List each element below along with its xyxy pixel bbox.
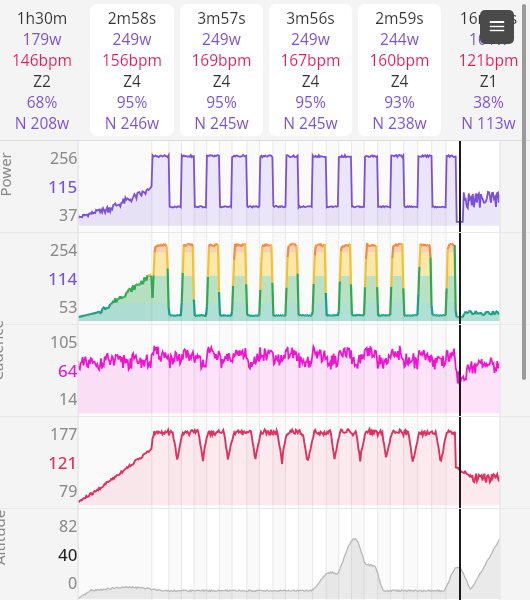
staticText: 244w	[361, 28, 438, 49]
staticText: 82	[59, 515, 78, 537]
staticText: 38%	[450, 91, 527, 112]
staticText: 1h30m	[3, 7, 81, 28]
staticText: 2m59s	[361, 7, 438, 28]
staticText: N 238w	[361, 112, 438, 133]
button[interactable]: 16m21s	[447, 4, 530, 136]
staticText: 79	[59, 480, 78, 502]
staticText: Altitude	[0, 509, 9, 565]
button[interactable]: 2m58s	[90, 4, 174, 136]
staticText: 37	[59, 204, 78, 226]
staticText: 254	[50, 239, 78, 261]
staticText: Cadence	[0, 319, 6, 380]
staticText: 64	[58, 359, 78, 382]
staticText: 95%	[93, 91, 171, 112]
staticText: Z4	[272, 70, 349, 91]
staticText: 121bpm	[450, 49, 527, 70]
staticText: 114	[48, 267, 78, 290]
staticText: Z2	[3, 70, 81, 91]
staticText: 93%	[361, 91, 438, 112]
staticText: N 245w	[183, 112, 260, 133]
staticText: 179w	[3, 28, 81, 49]
staticText: 105	[50, 331, 78, 353]
button[interactable]: Lap list	[480, 10, 514, 44]
staticText: 156bpm	[93, 49, 171, 70]
staticText: 95%	[183, 91, 260, 112]
staticText: 249w	[183, 28, 260, 49]
staticText: Z4	[93, 70, 171, 91]
staticText: N 245w	[272, 112, 349, 133]
staticText: 68%	[3, 91, 81, 112]
staticText: 256	[50, 147, 78, 169]
staticText: 40	[58, 543, 78, 566]
staticText: Z4	[361, 70, 438, 91]
staticText: 167bpm	[272, 49, 349, 70]
button[interactable]: 1h30m	[0, 4, 84, 136]
staticText: Z1	[450, 70, 527, 91]
staticText: Power	[0, 151, 14, 196]
staticText: 3m57s	[183, 7, 260, 28]
staticText: 2m58s	[93, 7, 171, 28]
staticText: N 113w	[450, 112, 527, 133]
staticText: 169bpm	[183, 49, 260, 70]
button[interactable]: 3m57s	[180, 4, 263, 136]
staticText: 160bpm	[361, 49, 438, 70]
staticText: 177	[50, 423, 78, 445]
staticText: N 246w	[93, 112, 171, 133]
staticText: 0	[68, 572, 78, 594]
staticText: 101w	[450, 28, 527, 49]
staticText: Z4	[183, 70, 260, 91]
button[interactable]: 3m56s	[269, 4, 352, 136]
staticText: 146bpm	[3, 49, 81, 70]
staticText: 115	[48, 175, 78, 198]
staticText: N 208w	[3, 112, 81, 133]
staticText: 14	[59, 388, 78, 410]
staticText: 3m56s	[272, 7, 349, 28]
staticText: 53	[59, 296, 78, 318]
staticText: 249w	[93, 28, 171, 49]
staticText: 249w	[272, 28, 349, 49]
staticText: 121	[48, 451, 78, 474]
staticText: 16m21s	[450, 7, 527, 28]
button[interactable]: 2m59s	[358, 4, 441, 136]
staticText: 95%	[272, 91, 349, 112]
